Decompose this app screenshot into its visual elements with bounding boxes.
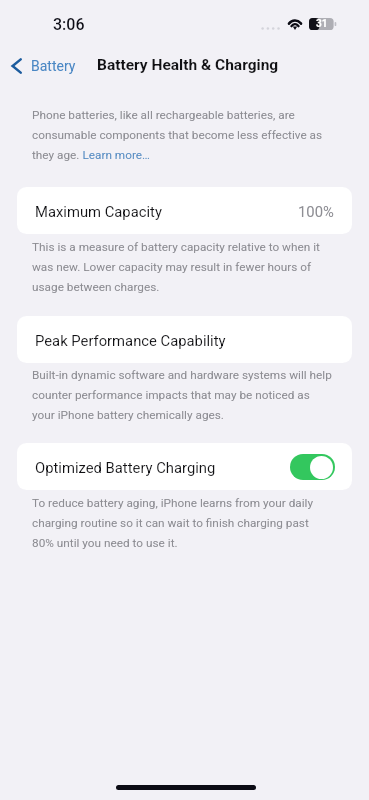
staticText: Battery Health & Charging — [97, 56, 279, 74]
staticText: 31 — [316, 18, 328, 30]
staticText: Battery — [31, 58, 76, 74]
button[interactable]: Learn more — [83, 147, 150, 163]
button[interactable]: Peak Performance Capability — [17, 316, 352, 363]
other: Wi-Fi — [285, 16, 305, 31]
staticText: Optimized Battery Charging — [35, 459, 216, 476]
button[interactable]: Maximum Capacity — [17, 187, 352, 234]
staticText: 100% — [298, 203, 334, 220]
button[interactable]: Battery — [11, 52, 76, 80]
staticText: 3:06 — [53, 15, 85, 34]
staticText: Maximum Capacity — [35, 203, 162, 220]
staticText: To reduce battery aging, iPhone learns f… — [32, 492, 332, 552]
staticText: This is a measure of battery capacity re… — [32, 236, 332, 296]
staticText: Phone batteries, like all rechargeable b… — [32, 104, 332, 164]
staticText: Peak Performance Capability — [35, 332, 226, 349]
staticText: Built-in dynamic software and hardware s… — [32, 364, 332, 424]
other: Cellular signal — [260, 22, 282, 32]
button[interactable]: Optimized Battery Charging, on — [290, 454, 335, 480]
button[interactable]: Optimized Battery Charging — [17, 443, 352, 490]
other: Battery 31 percent — [309, 18, 337, 30]
